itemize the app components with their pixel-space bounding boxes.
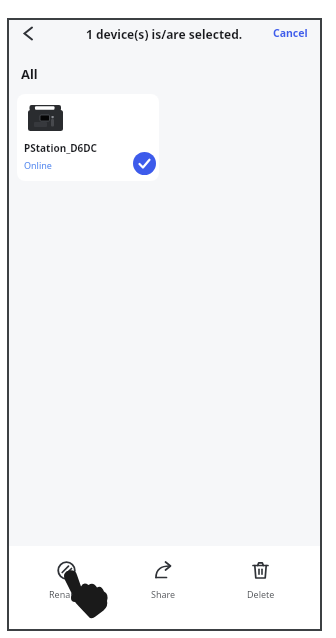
staticText: All bbox=[21, 65, 38, 83]
staticText: 1 device(s) is/are selected. bbox=[86, 26, 243, 42]
button[interactable]: Share bbox=[115, 561, 212, 631]
staticText: Online bbox=[24, 159, 52, 171]
button[interactable]: Rename bbox=[18, 561, 115, 631]
staticText: PStation_D6DC bbox=[24, 141, 98, 155]
staticText: Cancel bbox=[273, 26, 308, 40]
button[interactable]: Cancel bbox=[273, 26, 308, 40]
staticText: Share bbox=[151, 588, 176, 600]
button[interactable]: Delete bbox=[212, 561, 309, 631]
staticText: Rename bbox=[49, 588, 84, 600]
button[interactable]: PStation_D6DC bbox=[17, 94, 159, 181]
staticText: Delete bbox=[247, 588, 275, 600]
button[interactable] bbox=[19, 24, 37, 42]
